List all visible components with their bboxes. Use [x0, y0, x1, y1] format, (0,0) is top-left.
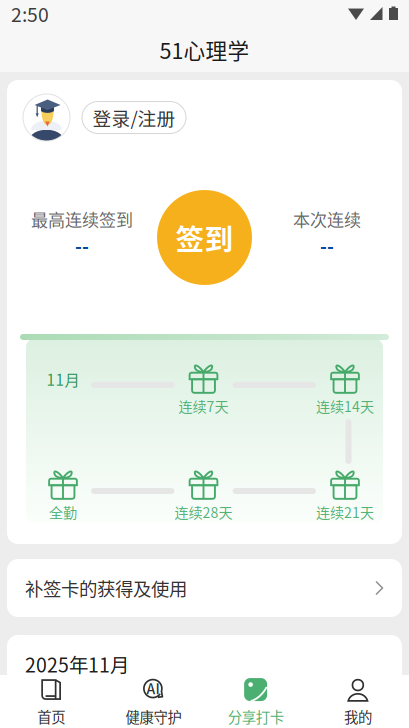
button[interactable]: 签到 — [157, 190, 252, 285]
button[interactable]: 补签卡的获得及使用 — [7, 559, 402, 617]
staticText: AI — [146, 678, 159, 698]
staticText: 健康守护 — [125, 706, 181, 727]
button[interactable]: AI — [102, 670, 204, 728]
staticText: 连续7天 — [178, 395, 228, 416]
staticText: 我的 — [344, 706, 372, 727]
button[interactable]: 分享打卡 — [204, 670, 307, 728]
staticText: 连续21天 — [316, 501, 374, 522]
staticText: -- — [320, 231, 334, 258]
staticText: 签到 — [175, 217, 233, 258]
staticText: 2025年11月 — [25, 650, 129, 678]
staticText: 连续14天 — [316, 395, 374, 416]
staticText: -- — [75, 231, 89, 258]
staticText: 最高连续签到 — [31, 207, 133, 231]
staticText: 11月 — [46, 368, 79, 390]
staticText: 首页 — [37, 706, 65, 727]
staticText: 连续28天 — [174, 501, 232, 522]
staticText: 补签卡的获得及使用 — [25, 575, 187, 601]
staticText: 2:50 — [11, 0, 49, 27]
button[interactable]: 我的 — [307, 670, 409, 728]
button[interactable]: 登录/注册 — [82, 101, 186, 133]
staticText: 登录/注册 — [92, 104, 175, 131]
staticText: 全勤 — [49, 501, 77, 522]
staticText: 本次连续 — [293, 207, 361, 231]
button[interactable]: 首页 — [0, 670, 102, 728]
staticText: 分享打卡 — [228, 706, 284, 727]
staticText: 51心理学 — [159, 34, 249, 65]
